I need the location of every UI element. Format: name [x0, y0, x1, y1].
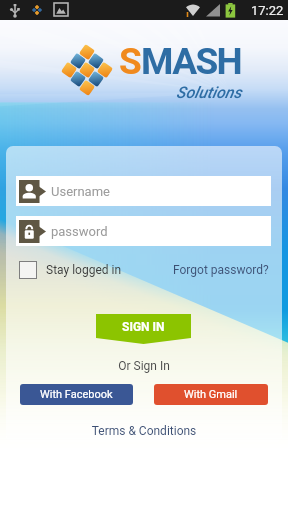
- staticText: Stay logged in: [46, 263, 122, 277]
- staticText: Username: [51, 184, 110, 199]
- staticText: With Facebook: [40, 388, 113, 401]
- staticText: 17:22: [251, 3, 284, 18]
- button[interactable]: With Gmail: [154, 384, 268, 405]
- button[interactable]: SIGN IN: [96, 314, 191, 344]
- staticText: SIGN IN: [122, 320, 165, 334]
- button[interactable]: Terms & Conditions: [6, 424, 282, 438]
- staticText: Solutions: [176, 83, 242, 102]
- button[interactable]: Forgot password?: [173, 263, 269, 277]
- staticText: With Gmail: [184, 388, 238, 401]
- staticText: MASH: [141, 40, 242, 83]
- button[interactable]: Username: [16, 176, 271, 206]
- button[interactable]: Stay logged in: [19, 261, 122, 279]
- staticText: S: [119, 40, 141, 83]
- staticText: password: [51, 224, 108, 239]
- button[interactable]: With Facebook: [20, 384, 133, 405]
- staticText: Or Sign In: [6, 359, 282, 373]
- button[interactable]: password: [16, 216, 271, 246]
